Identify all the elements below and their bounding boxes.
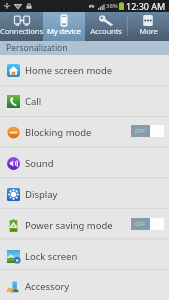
staticText: Power saving mode [25, 219, 113, 232]
staticText: Home screen mode [25, 64, 113, 77]
staticText: Lock screen [25, 250, 78, 263]
staticText: More [139, 26, 158, 37]
staticText: Personalization [6, 42, 68, 54]
button[interactable]: Accounts [85, 12, 127, 41]
staticText: Blocking mode [25, 126, 92, 139]
staticText: Sound [25, 157, 54, 170]
button[interactable]: Display [0, 179, 169, 210]
staticText: Connections [0, 26, 43, 37]
button[interactable]: Home screen mode [0, 55, 169, 86]
button[interactable]: Blocking mode [0, 117, 169, 148]
button[interactable]: Lock screen [0, 241, 169, 272]
staticText: Display [25, 188, 58, 201]
button[interactable]: Accessory [0, 272, 169, 300]
staticText: OFF [135, 127, 146, 135]
button[interactable]: Turn on [131, 125, 164, 137]
button[interactable]: Call [0, 86, 169, 117]
button[interactable]: Power saving mode [0, 210, 169, 241]
button[interactable]: More [127, 12, 169, 41]
button[interactable]: Connections [0, 12, 43, 41]
staticText: 12:30 AM [126, 0, 166, 12]
button[interactable]: My device [43, 12, 85, 41]
staticText: Accounts [90, 26, 122, 37]
button[interactable]: Sound [0, 148, 169, 179]
staticText: Accessory [25, 280, 70, 293]
button[interactable]: Turn on [131, 218, 164, 230]
staticText: Call [25, 95, 42, 108]
staticText: OFF [135, 220, 146, 228]
staticText: My device [47, 26, 81, 37]
staticText: 38% [106, 2, 118, 10]
